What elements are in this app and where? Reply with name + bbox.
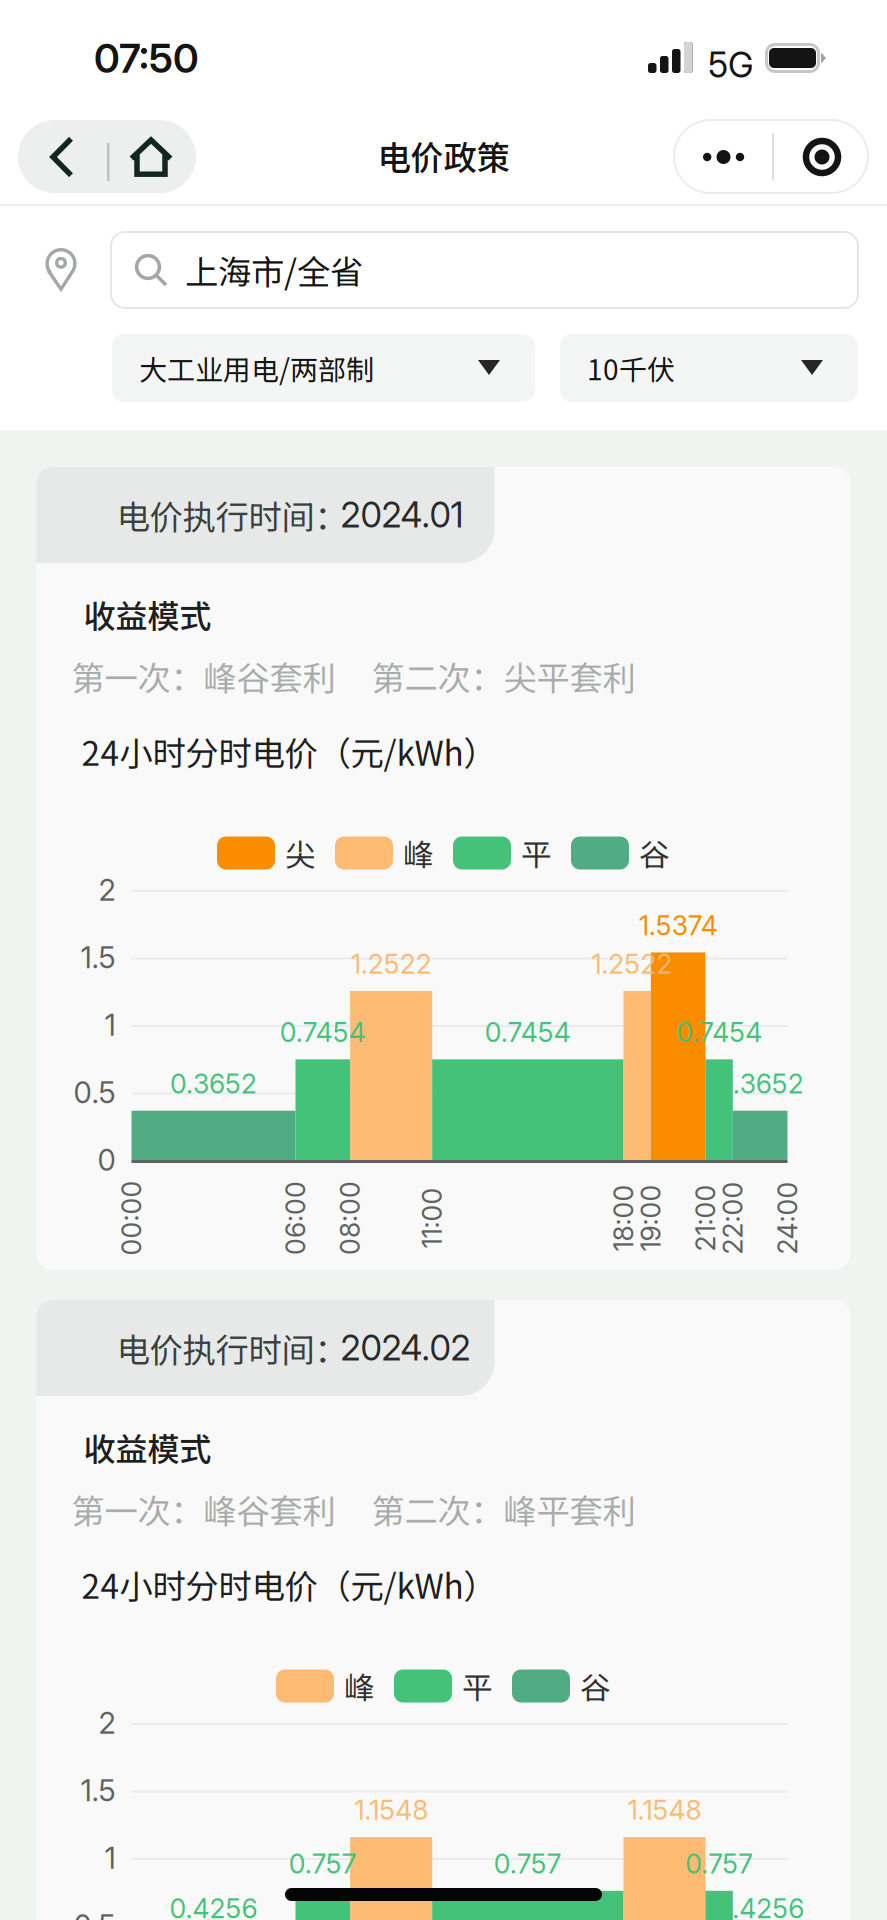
staticText: 峰 bbox=[344, 1664, 375, 1708]
staticText: 峰谷套利 bbox=[203, 652, 335, 700]
staticText: 2024.01 bbox=[340, 494, 463, 536]
staticText: 1.5 bbox=[80, 940, 115, 975]
staticText: 10千伏 bbox=[587, 348, 675, 388]
button[interactable]: More options and Mini program bbox=[674, 120, 868, 193]
staticText: 0.7454 bbox=[485, 1016, 571, 1048]
staticText: 峰 bbox=[403, 831, 434, 875]
staticText: 电价执行时间： bbox=[116, 491, 347, 539]
staticText: 电价执行时间： bbox=[116, 1324, 347, 1372]
staticText: 07:50 bbox=[94, 34, 199, 82]
staticText: 收益模式 bbox=[83, 1424, 211, 1470]
staticText: 1.1548 bbox=[354, 1794, 428, 1826]
staticText: 19:00 bbox=[617, 1202, 684, 1234]
staticText: 0.757 bbox=[289, 1848, 357, 1880]
staticText: 24小时分时电价（元/kWh） bbox=[81, 1560, 496, 1608]
staticText: 大工业用电/两部制 bbox=[139, 348, 374, 388]
staticText: 21:00 bbox=[672, 1202, 739, 1234]
staticText: 1 bbox=[104, 1840, 115, 1876]
staticText: 0.757 bbox=[494, 1848, 562, 1880]
staticText: 谷 bbox=[639, 831, 670, 875]
staticText: 上海市/全省 bbox=[185, 246, 363, 294]
staticText: 第二次： bbox=[371, 1485, 503, 1533]
staticText: 0.4256 bbox=[716, 1892, 804, 1920]
staticText: 0.5 bbox=[73, 1075, 115, 1110]
button[interactable]: Back and Home bbox=[18, 120, 196, 193]
staticText: 平 bbox=[462, 1664, 493, 1708]
staticText: 06:00 bbox=[258, 1202, 332, 1234]
staticText: 收益模式 bbox=[83, 591, 211, 637]
staticText: 24小时分时电价（元/kWh） bbox=[81, 727, 496, 775]
staticText: 0.757 bbox=[685, 1848, 753, 1880]
staticText: 谷 bbox=[580, 1664, 611, 1708]
staticText: 1.5374 bbox=[639, 909, 718, 942]
button[interactable]: 上海市/全省 bbox=[111, 232, 858, 308]
staticText: 11:00 bbox=[402, 1202, 463, 1234]
button[interactable]: 10千伏 bbox=[560, 334, 858, 402]
staticText: 尖平套利 bbox=[503, 652, 635, 700]
staticText: 24:00 bbox=[751, 1202, 824, 1234]
staticText: 0.4256 bbox=[169, 1892, 257, 1920]
staticText: 0.3652 bbox=[170, 1068, 257, 1100]
staticText: 00:00 bbox=[94, 1202, 169, 1234]
staticText: 1.1548 bbox=[627, 1794, 701, 1826]
staticText: 0.7454 bbox=[676, 1016, 762, 1048]
staticText: 0.3652 bbox=[717, 1068, 804, 1100]
staticText: 峰平套利 bbox=[503, 1485, 635, 1533]
staticText: 0.7454 bbox=[280, 1016, 366, 1048]
staticText: 2024.02 bbox=[340, 1327, 470, 1369]
staticText: 尖 bbox=[285, 831, 316, 875]
staticText: 第二次： bbox=[371, 652, 503, 700]
staticText: 2 bbox=[98, 872, 115, 908]
staticText: 平 bbox=[521, 831, 552, 875]
staticText: 第一次： bbox=[71, 652, 203, 700]
staticText: 5G bbox=[708, 44, 754, 86]
staticText: 1.5 bbox=[80, 1773, 115, 1808]
staticText: 峰谷套利 bbox=[203, 1485, 335, 1533]
staticText: 08:00 bbox=[313, 1202, 387, 1234]
staticText: 1.2522 bbox=[351, 948, 432, 980]
staticText: 0 bbox=[97, 1142, 115, 1178]
staticText: 电价政策 bbox=[377, 131, 509, 180]
staticText: 第一次： bbox=[71, 1485, 203, 1533]
button[interactable]: 大工业用电/两部制 bbox=[112, 334, 535, 402]
staticText: 18:00 bbox=[590, 1202, 657, 1234]
staticText: 22:00 bbox=[696, 1202, 769, 1234]
staticText: 1.2522 bbox=[591, 948, 672, 980]
staticText: 2 bbox=[98, 1705, 115, 1741]
staticText: 1 bbox=[104, 1007, 115, 1043]
staticText: 0.5 bbox=[73, 1908, 115, 1920]
